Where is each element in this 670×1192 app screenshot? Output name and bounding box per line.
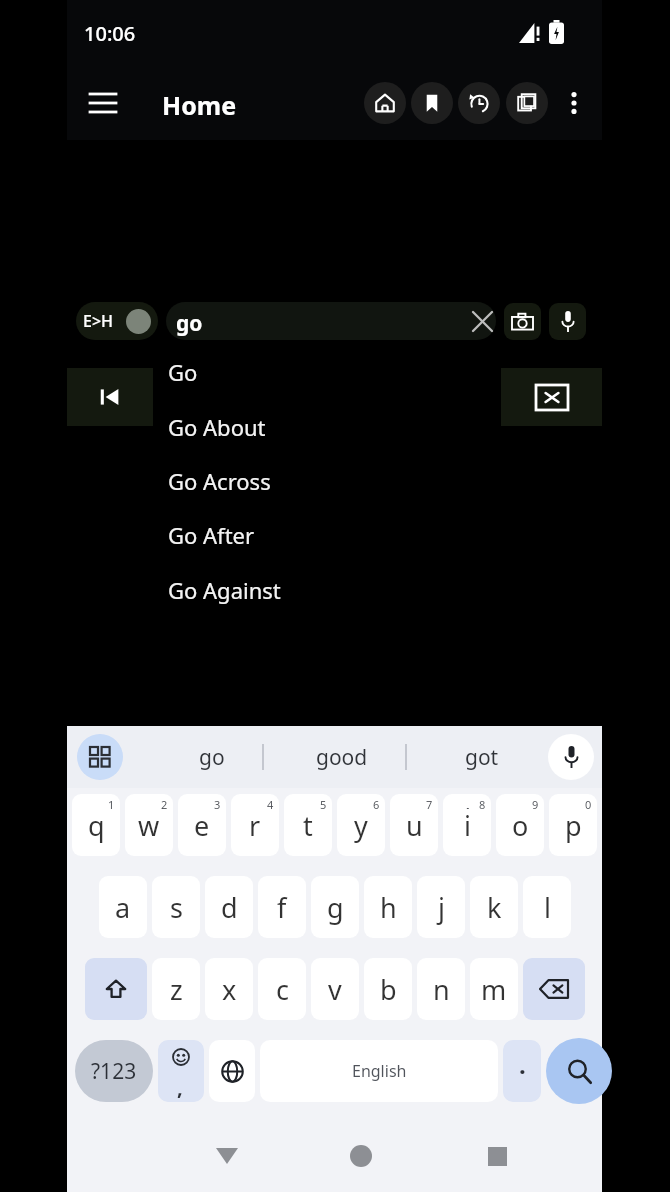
staticText: c (276, 971, 289, 1008)
button[interactable]: Search by image (504, 303, 541, 340)
button[interactable]: ?123 (75, 1040, 153, 1102)
button[interactable]: Previous (67, 368, 153, 426)
staticText: l (544, 889, 551, 926)
staticText: 4 (267, 797, 274, 811)
button[interactable]: c (258, 958, 306, 1020)
button[interactable]: History (458, 82, 500, 124)
staticText: Go Across (168, 466, 271, 496)
button[interactable]: j (417, 876, 465, 938)
button[interactable]: Space (260, 1040, 498, 1102)
staticText: , (177, 1074, 183, 1101)
staticText: w (138, 807, 160, 844)
staticText: 9 (532, 797, 539, 811)
staticText: y (354, 807, 368, 844)
button[interactable]: Home page (364, 82, 406, 124)
staticText: E>H (83, 310, 114, 332)
button[interactable]: r (231, 794, 279, 856)
button[interactable]: More options (554, 81, 594, 125)
staticText: t (303, 807, 313, 844)
button[interactable]: s (152, 876, 200, 938)
staticText: go (176, 309, 203, 338)
staticText: a (115, 889, 131, 926)
button[interactable]: d (205, 876, 253, 938)
staticText: go (199, 743, 225, 772)
staticText: u (406, 807, 423, 844)
staticText: 10:06 (84, 20, 136, 47)
button[interactable]: Home (335, 1130, 387, 1182)
button[interactable]: h (364, 876, 412, 938)
staticText: · (466, 799, 470, 809)
staticText: d (221, 889, 238, 926)
staticText: f (277, 889, 287, 926)
button[interactable]: Voice input (548, 734, 594, 780)
staticText: p (565, 807, 582, 844)
button[interactable]: go (166, 302, 496, 340)
staticText: 3 (214, 797, 221, 811)
button[interactable]: Shift (85, 958, 147, 1020)
staticText: Go About (168, 412, 266, 442)
button[interactable]: got (427, 734, 537, 780)
staticText: v (328, 971, 342, 1008)
staticText: 2 (161, 797, 168, 811)
button[interactable]: e (178, 794, 226, 856)
button[interactable]: Menu (80, 80, 126, 126)
button[interactable]: Clear (464, 303, 500, 339)
button[interactable]: v (311, 958, 359, 1020)
button[interactable]: l (523, 876, 571, 938)
button[interactable]: Go About (160, 403, 490, 451)
button[interactable]: o (496, 794, 544, 856)
staticText: i (464, 807, 471, 844)
button[interactable]: x (205, 958, 253, 1020)
button[interactable]: Search (546, 1038, 612, 1104)
button[interactable]: u (390, 794, 438, 856)
button[interactable]: a (99, 876, 147, 938)
button[interactable]: Backspace (523, 958, 585, 1020)
button[interactable]: m (470, 958, 518, 1020)
staticText: j (438, 889, 445, 926)
button[interactable]: t (284, 794, 332, 856)
button[interactable]: k (470, 876, 518, 938)
button[interactable]: Recents (471, 1130, 523, 1182)
staticText: ?123 (91, 1057, 137, 1086)
button[interactable]: Close (501, 368, 602, 426)
button[interactable]: y (337, 794, 385, 856)
button[interactable]: Tabs (506, 82, 548, 124)
button[interactable]: g (311, 876, 359, 938)
staticText: good (316, 743, 368, 772)
button[interactable]: Go After (160, 511, 490, 559)
staticText: . (519, 1048, 526, 1081)
button[interactable]: b (364, 958, 412, 1020)
staticText: h (380, 889, 397, 926)
button[interactable]: p (549, 794, 597, 856)
staticText: k (487, 889, 502, 926)
button[interactable]: Keyboard options (77, 734, 123, 780)
button[interactable]: go (157, 734, 267, 780)
staticText: e (194, 807, 210, 844)
staticText: Go (168, 357, 198, 387)
button[interactable]: w (125, 794, 173, 856)
staticText: Go Against (168, 575, 281, 605)
button[interactable]: Bookmarks (411, 82, 453, 124)
staticText: English (352, 1060, 407, 1082)
staticText: b (380, 971, 397, 1008)
button[interactable]: Go Against (160, 566, 490, 614)
staticText: z (170, 971, 183, 1008)
staticText: 7 (426, 797, 433, 811)
button[interactable]: Emoji and comma (158, 1040, 204, 1102)
button[interactable]: n (417, 958, 465, 1020)
button[interactable]: i (443, 794, 491, 856)
button[interactable]: E>H (76, 302, 158, 340)
button[interactable]: Period (503, 1040, 541, 1102)
staticText: x (222, 971, 237, 1008)
button[interactable]: Go (160, 348, 490, 396)
button[interactable]: q (72, 794, 120, 856)
staticText: s (170, 889, 183, 926)
button[interactable]: z (152, 958, 200, 1020)
button[interactable]: Go Across (160, 457, 490, 505)
button[interactable]: Hide keyboard (201, 1130, 253, 1182)
button[interactable]: Change language (209, 1040, 255, 1102)
button[interactable]: f (258, 876, 306, 938)
staticText: Home (162, 88, 237, 122)
button[interactable]: Voice search (549, 303, 586, 340)
button[interactable]: good (287, 734, 397, 780)
